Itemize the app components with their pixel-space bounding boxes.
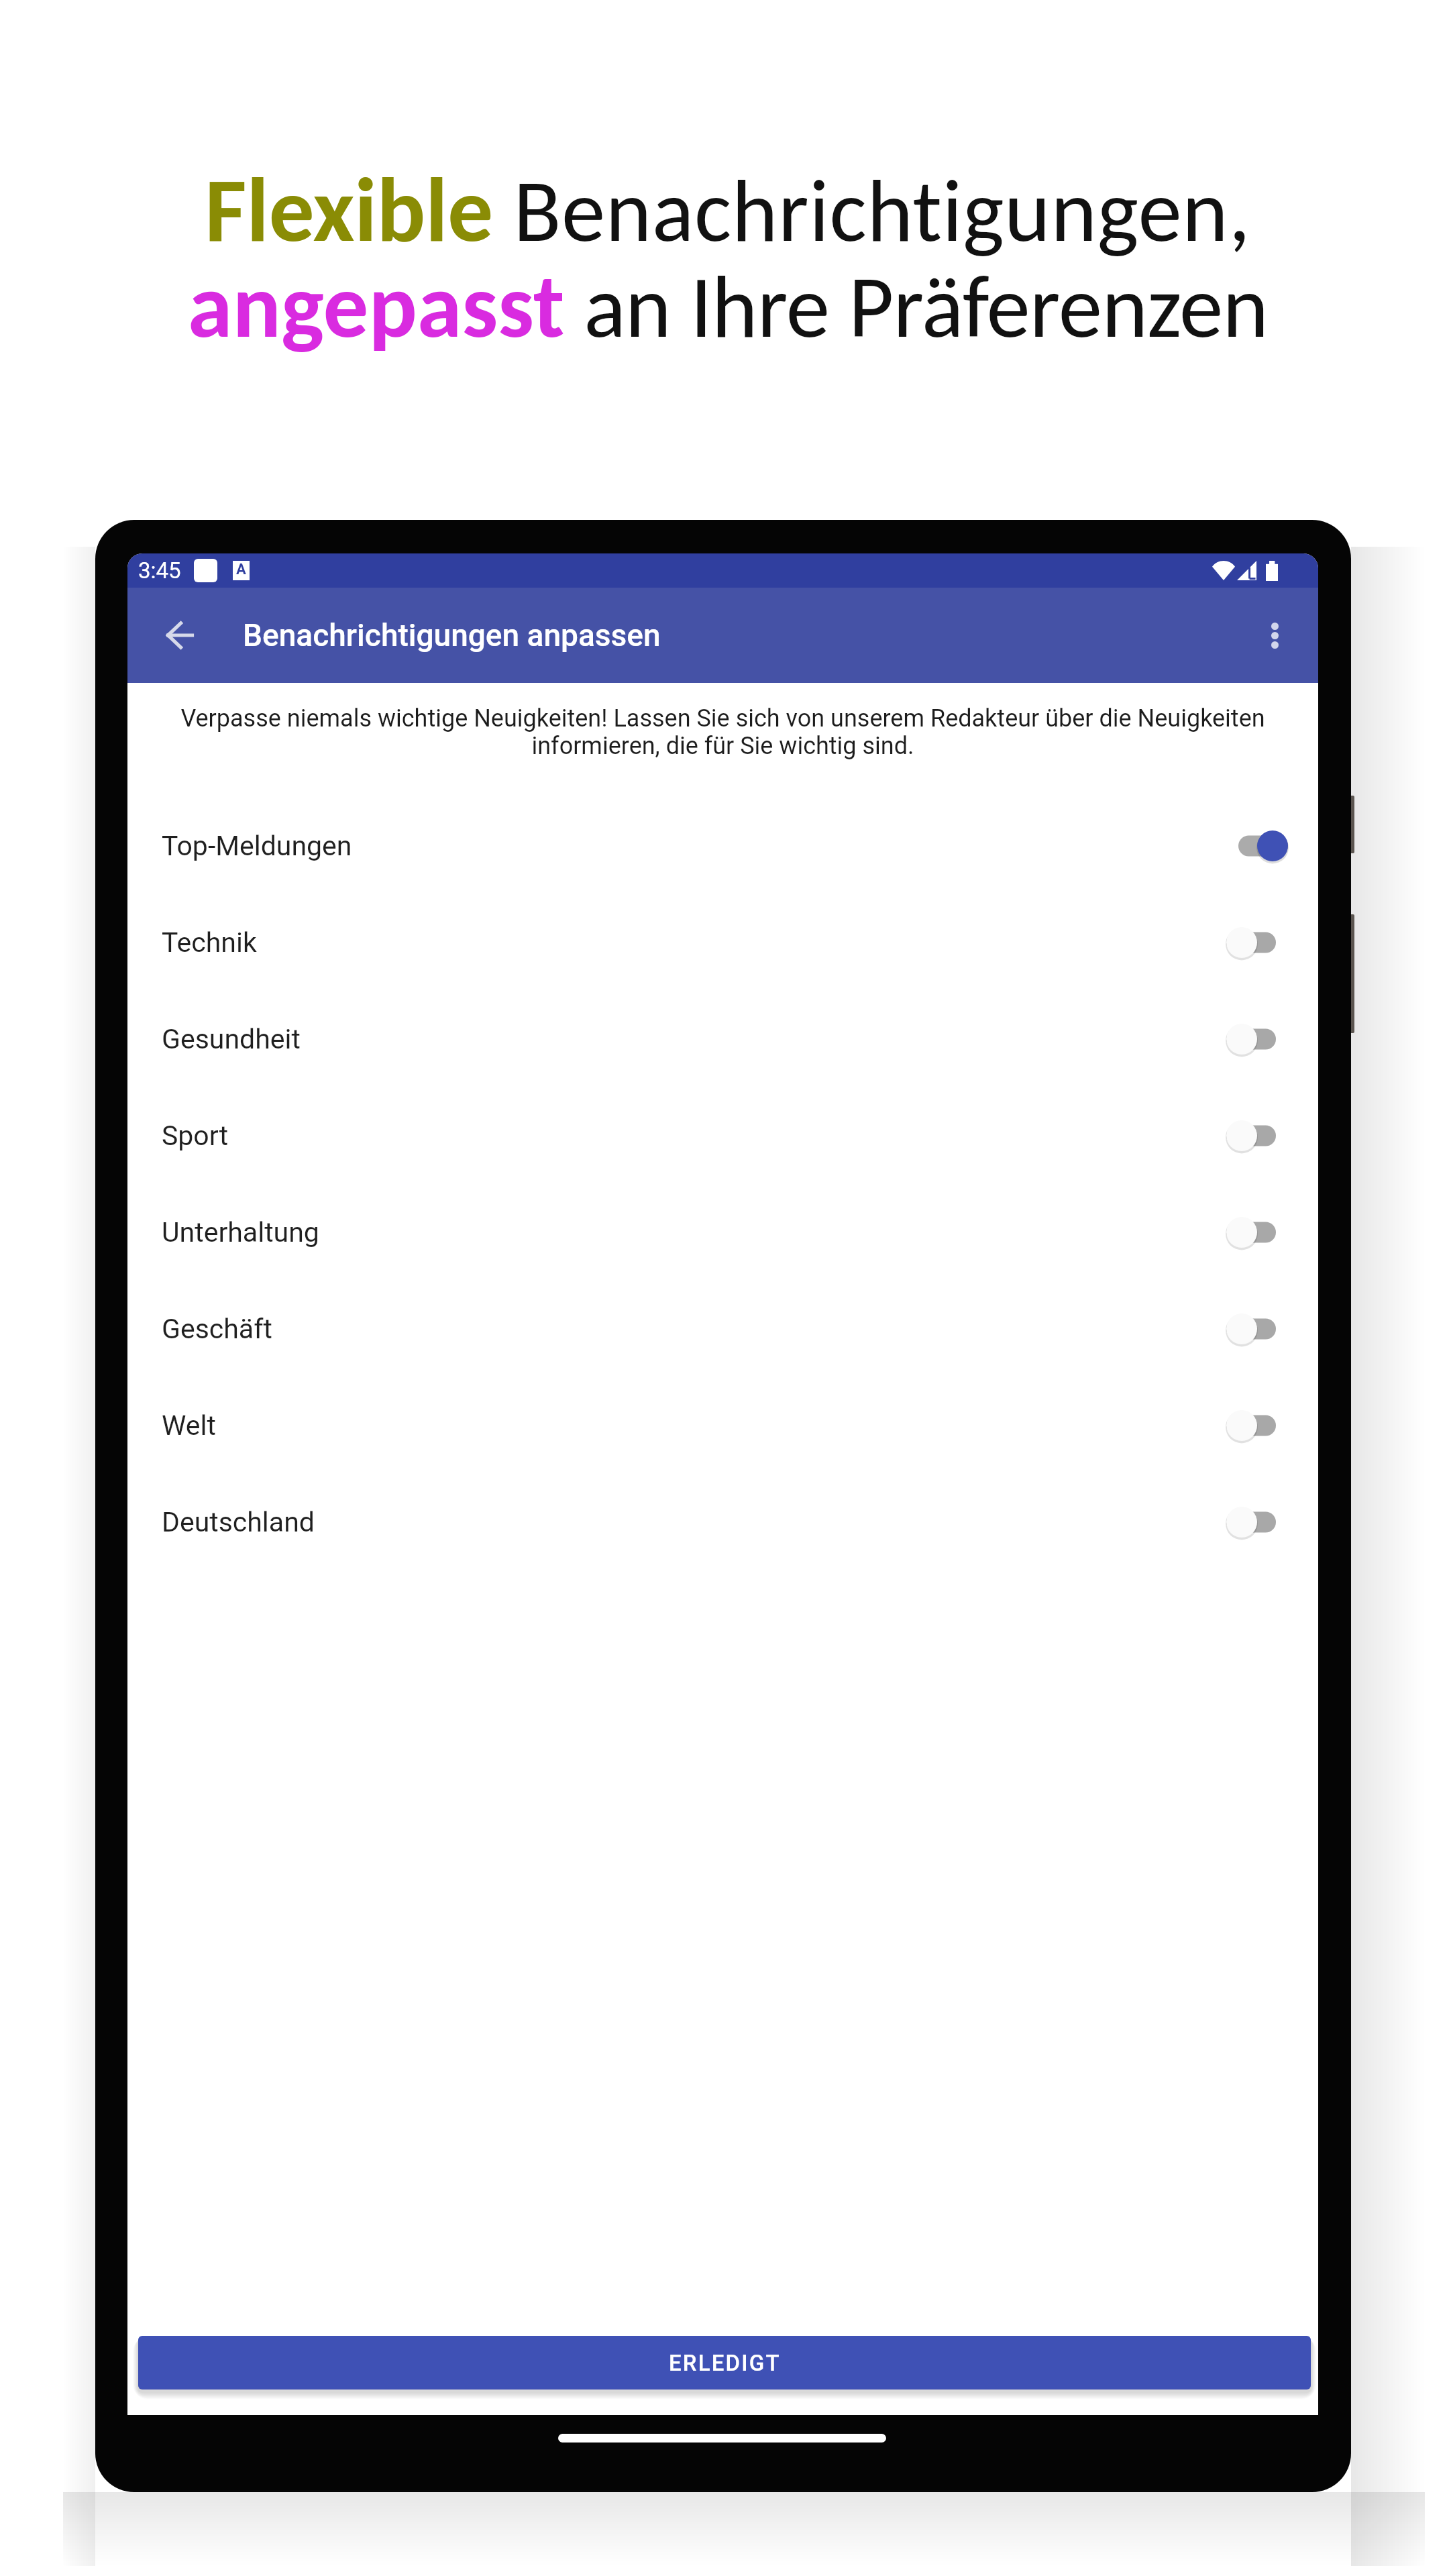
staticText: Verpasse niemals wichtige Neuigkeiten! L… xyxy=(172,704,1274,759)
button[interactable]: Welt xyxy=(127,1377,1318,1474)
button[interactable]: ERLEDIGT xyxy=(138,2336,1311,2390)
staticText: Unterhaltung xyxy=(162,1216,319,1248)
staticText: Welt xyxy=(162,1409,216,1442)
button[interactable]: Zurück xyxy=(152,607,208,663)
staticText: Flexible Benachrichtigungen, angepasst a… xyxy=(7,154,1449,361)
staticText: 3:45 xyxy=(138,557,181,584)
button[interactable]: Mehr Optionen xyxy=(1249,610,1300,661)
button[interactable]: Deutschland xyxy=(127,1474,1318,1570)
staticText: Top-Meldungen xyxy=(162,830,352,862)
staticText: Benachrichtigungen anpassen xyxy=(243,617,661,653)
staticText: ERLEDIGT xyxy=(669,2350,781,2376)
button[interactable]: Geschäft xyxy=(127,1281,1318,1377)
staticText: Technik xyxy=(162,926,257,959)
staticText: Gesundheit xyxy=(162,1023,301,1055)
staticText: Geschäft xyxy=(162,1313,272,1345)
staticText: Deutschland xyxy=(162,1506,315,1538)
button[interactable]: Gesundheit xyxy=(127,991,1318,1087)
button[interactable]: Top-Meldungen xyxy=(127,798,1318,894)
staticText: Sport xyxy=(162,1120,229,1152)
button[interactable]: Unterhaltung xyxy=(127,1184,1318,1281)
button[interactable]: Technik xyxy=(127,894,1318,991)
staticText: A xyxy=(236,561,246,578)
button[interactable]: Sport xyxy=(127,1087,1318,1184)
